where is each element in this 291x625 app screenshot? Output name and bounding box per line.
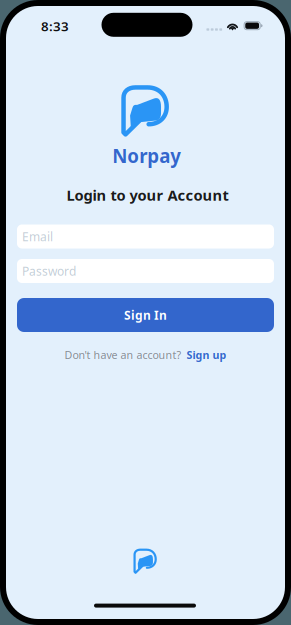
button[interactable]: Sign up [186, 348, 226, 362]
staticText: Password [22, 263, 76, 279]
button[interactable]: Sign In [17, 298, 274, 332]
staticText: Norpay [112, 143, 181, 168]
staticText: Sign up [186, 348, 226, 362]
staticText: Email [22, 228, 53, 244]
staticText: Login to your Account [66, 185, 228, 205]
staticText: Don't have an account? [64, 348, 181, 362]
staticText: 8:33 [41, 17, 69, 35]
staticText: Sign In [124, 307, 167, 323]
